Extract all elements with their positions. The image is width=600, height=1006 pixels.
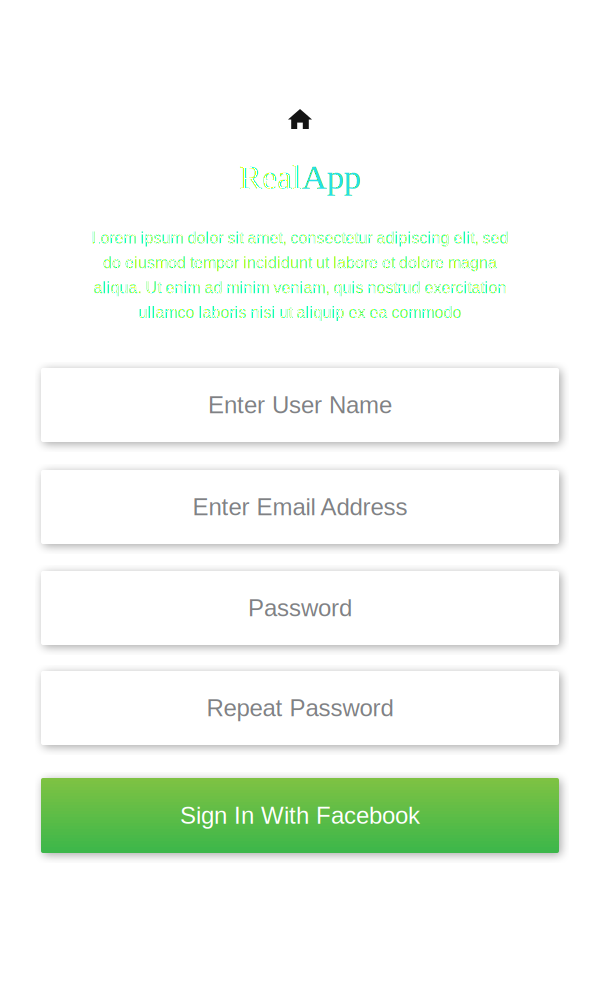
button[interactable]: Enter Email Address: [41, 470, 559, 544]
staticText: Sign In With Facebook: [180, 802, 420, 829]
staticText: Lorem ipsum dolor sit amet, consectetur …: [91, 229, 508, 247]
staticText: aliqua. Ut enim ad minim veniam, quis no…: [93, 279, 506, 297]
staticText: do eiusmod tempor incididunt ut labore e…: [103, 254, 497, 272]
staticText: Enter User Name: [208, 392, 392, 418]
button[interactable]: Sign In With Facebook: [41, 778, 559, 853]
button[interactable]: Repeat Password: [41, 671, 559, 745]
staticText: Password: [248, 595, 352, 621]
button[interactable]: Enter User Name: [41, 368, 559, 442]
staticText: Repeat Password: [206, 695, 393, 721]
image: [292, 495, 308, 511]
staticText: Enter Email Address: [192, 494, 407, 520]
staticText: Real: [239, 158, 302, 196]
button[interactable]: Password: [41, 571, 559, 645]
staticText: App: [302, 158, 361, 196]
staticText: ullamco laboris nisi ut aliquip ex ea co…: [138, 304, 461, 321]
